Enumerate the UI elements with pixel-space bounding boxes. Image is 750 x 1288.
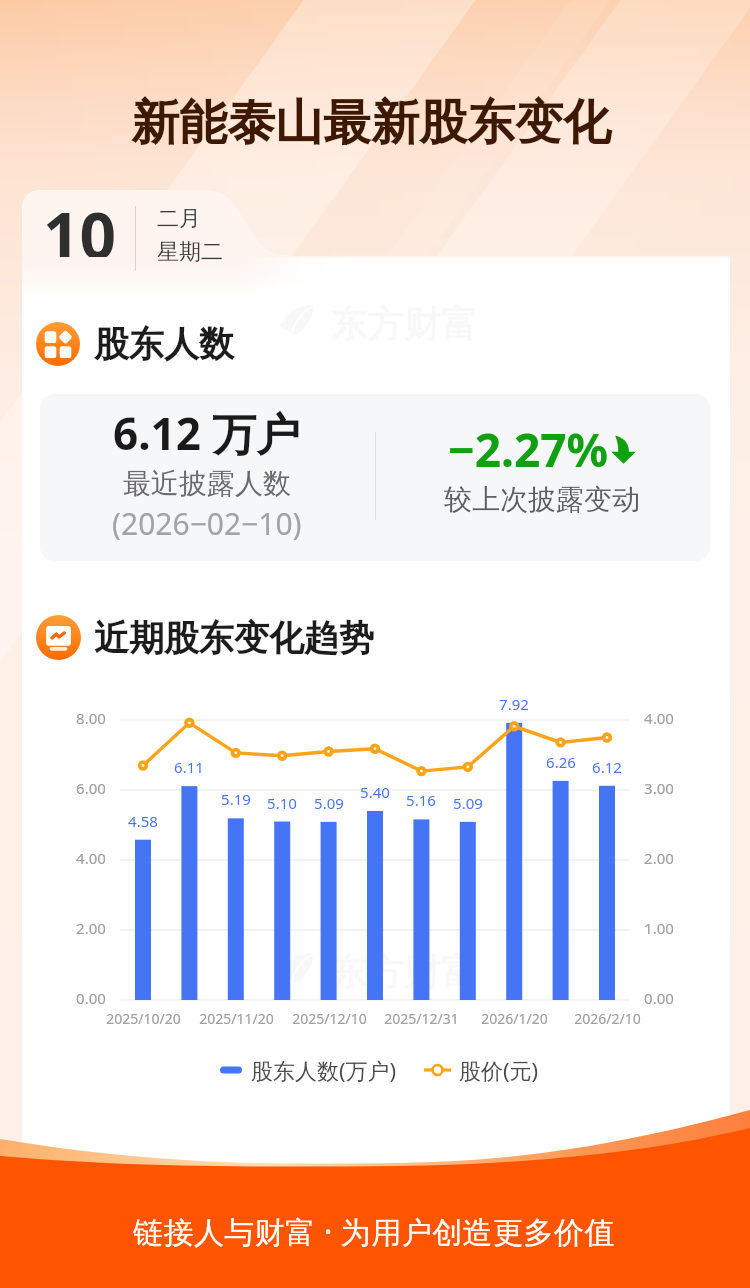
staticText: 8.00	[76, 708, 106, 728]
staticText: 星期二	[157, 238, 223, 266]
staticText: 2025/11/20	[199, 1009, 274, 1028]
button[interactable]: 10	[22, 190, 222, 256]
staticText: 二月	[157, 205, 201, 233]
staticText: 4.58	[128, 811, 158, 831]
staticText: 新能泰山最新股东变化	[131, 93, 611, 153]
staticText: 5.19	[221, 789, 251, 809]
staticText: (2026−02−10)	[112, 503, 302, 544]
staticText: 东方财富	[330, 949, 478, 996]
staticText: 5.10	[267, 793, 297, 813]
staticText: 2025/10/20	[106, 1009, 181, 1028]
staticText: 最近披露人数	[123, 466, 291, 501]
staticText: 1.00	[644, 918, 674, 938]
button[interactable]: 股东人数(万户)	[220, 1055, 539, 1085]
staticText: 0.00	[644, 988, 674, 1008]
other: Trend	[36, 615, 81, 660]
staticText: 5.40	[360, 782, 390, 802]
staticText: 6.00	[76, 778, 106, 798]
staticText: 股东人数	[94, 322, 234, 366]
staticText: 4.00	[76, 848, 106, 868]
button[interactable]: 6.12 万户	[40, 394, 710, 561]
staticText: 5.09	[314, 793, 344, 813]
staticText: 6.11	[174, 757, 204, 777]
staticText: 股价(元)	[459, 1055, 539, 1085]
staticText: 近期股东变化趋势	[94, 616, 374, 660]
staticText: 6.12	[592, 757, 622, 777]
other: Shareholders	[36, 322, 80, 366]
staticText: 2026/2/10	[574, 1009, 641, 1028]
button[interactable]: Shareholders	[36, 322, 234, 366]
staticText: 2025/12/10	[292, 1009, 367, 1028]
button[interactable]: Trend	[36, 615, 374, 660]
staticText: 5.09	[453, 793, 483, 813]
staticText: 2.00	[644, 848, 674, 868]
staticText: 0.00	[76, 988, 106, 1008]
staticText: 股东人数(万户)	[251, 1055, 397, 1085]
staticText: 5.16	[406, 790, 436, 810]
staticText: 链接人与财富 · 为用户创造更多价值	[133, 1211, 615, 1252]
staticText: 10	[43, 191, 117, 257]
staticText: 6.26	[546, 752, 576, 772]
staticText: 较上次披露变动	[444, 482, 640, 517]
staticText: 2.00	[76, 918, 106, 938]
staticText: 7.92	[499, 694, 529, 714]
staticText: 2026/1/20	[481, 1009, 548, 1028]
staticText: −2.27%	[448, 418, 609, 481]
staticText: 2025/12/31	[384, 1009, 459, 1028]
staticText: 6.12 万户	[113, 403, 301, 463]
staticText: 4.00	[644, 708, 674, 728]
staticText: 3.00	[644, 778, 674, 798]
